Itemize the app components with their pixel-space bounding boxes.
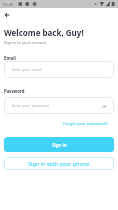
staticText: Password [4,88,25,94]
staticText: Email [4,55,16,61]
staticText: Forgot your password? [63,121,108,127]
button[interactable]: Sign in [4,137,114,152]
button[interactable]: Enter your password [4,97,114,114]
staticText: Enter your email [12,67,42,72]
button[interactable]: Enter your email [4,61,114,78]
staticText: 09:30 [3,2,14,7]
button[interactable]: Show password [100,102,108,110]
button[interactable]: Forgot your password? [57,120,114,128]
staticText: Sign in to your account [4,40,46,45]
button[interactable]: Back [2,10,12,20]
staticText: Sign in with your phone [28,160,90,167]
staticText: Enter your password [12,103,49,108]
staticText: Welcome back, Guy! [4,27,84,38]
staticText: Sign in [52,142,67,148]
button[interactable]: Sign in with your phone [4,157,114,170]
